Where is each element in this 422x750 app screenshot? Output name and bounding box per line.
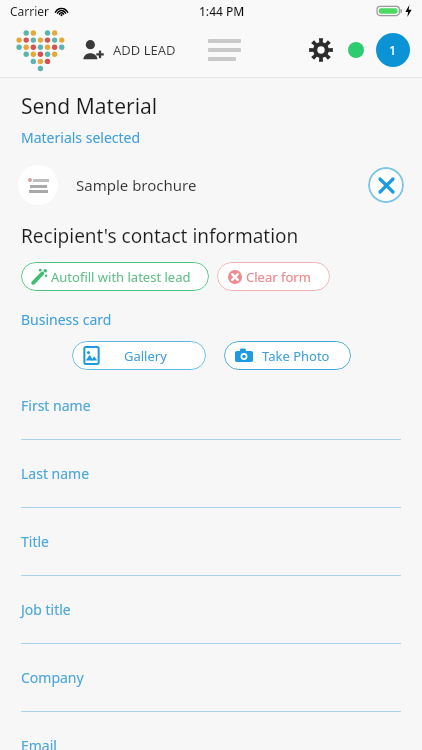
button[interactable]: ADD LEAD bbox=[82, 33, 176, 67]
button[interactable]: Menu bbox=[202, 33, 247, 67]
button[interactable]: First name bbox=[0, 396, 422, 464]
staticText: First name bbox=[21, 396, 91, 415]
button[interactable]: Title bbox=[0, 532, 422, 600]
button[interactable]: Last name bbox=[0, 464, 422, 532]
staticText: Take Photo bbox=[262, 347, 330, 365]
button[interactable]: Company bbox=[0, 668, 422, 736]
staticText: Job title bbox=[21, 600, 71, 619]
staticText: Autofill with latest lead bbox=[51, 268, 191, 286]
button[interactable]: Materials selected bbox=[21, 128, 141, 147]
button[interactable]: Remove material bbox=[368, 167, 404, 203]
staticText: Gallery bbox=[124, 347, 167, 365]
button[interactable]: 1 bbox=[376, 33, 410, 67]
staticText: Title bbox=[21, 532, 49, 551]
button[interactable]: Settings bbox=[306, 35, 336, 65]
staticText: ADD LEAD bbox=[113, 41, 176, 59]
staticText: Company bbox=[21, 668, 84, 687]
button[interactable]: Autofill with latest lead bbox=[21, 262, 209, 291]
staticText: Carrier bbox=[10, 3, 50, 19]
staticText: 1 bbox=[389, 41, 397, 59]
staticText: 1:44 PM bbox=[199, 3, 245, 19]
staticText: Email bbox=[21, 736, 57, 750]
staticText: Send Material bbox=[21, 92, 158, 121]
button[interactable]: Email bbox=[0, 736, 422, 750]
button[interactable]: Gallery bbox=[72, 341, 206, 370]
button[interactable]: Clear form bbox=[217, 262, 330, 291]
staticText: Recipient's contact information bbox=[21, 223, 299, 249]
button[interactable]: Job title bbox=[0, 600, 422, 668]
staticText: Business card bbox=[21, 310, 112, 329]
staticText: Clear form bbox=[246, 268, 311, 286]
staticText: Sample brochure bbox=[76, 175, 197, 195]
button[interactable]: Online status bbox=[348, 42, 364, 58]
staticText: Last name bbox=[21, 464, 90, 483]
button[interactable]: Take Photo bbox=[224, 341, 351, 370]
